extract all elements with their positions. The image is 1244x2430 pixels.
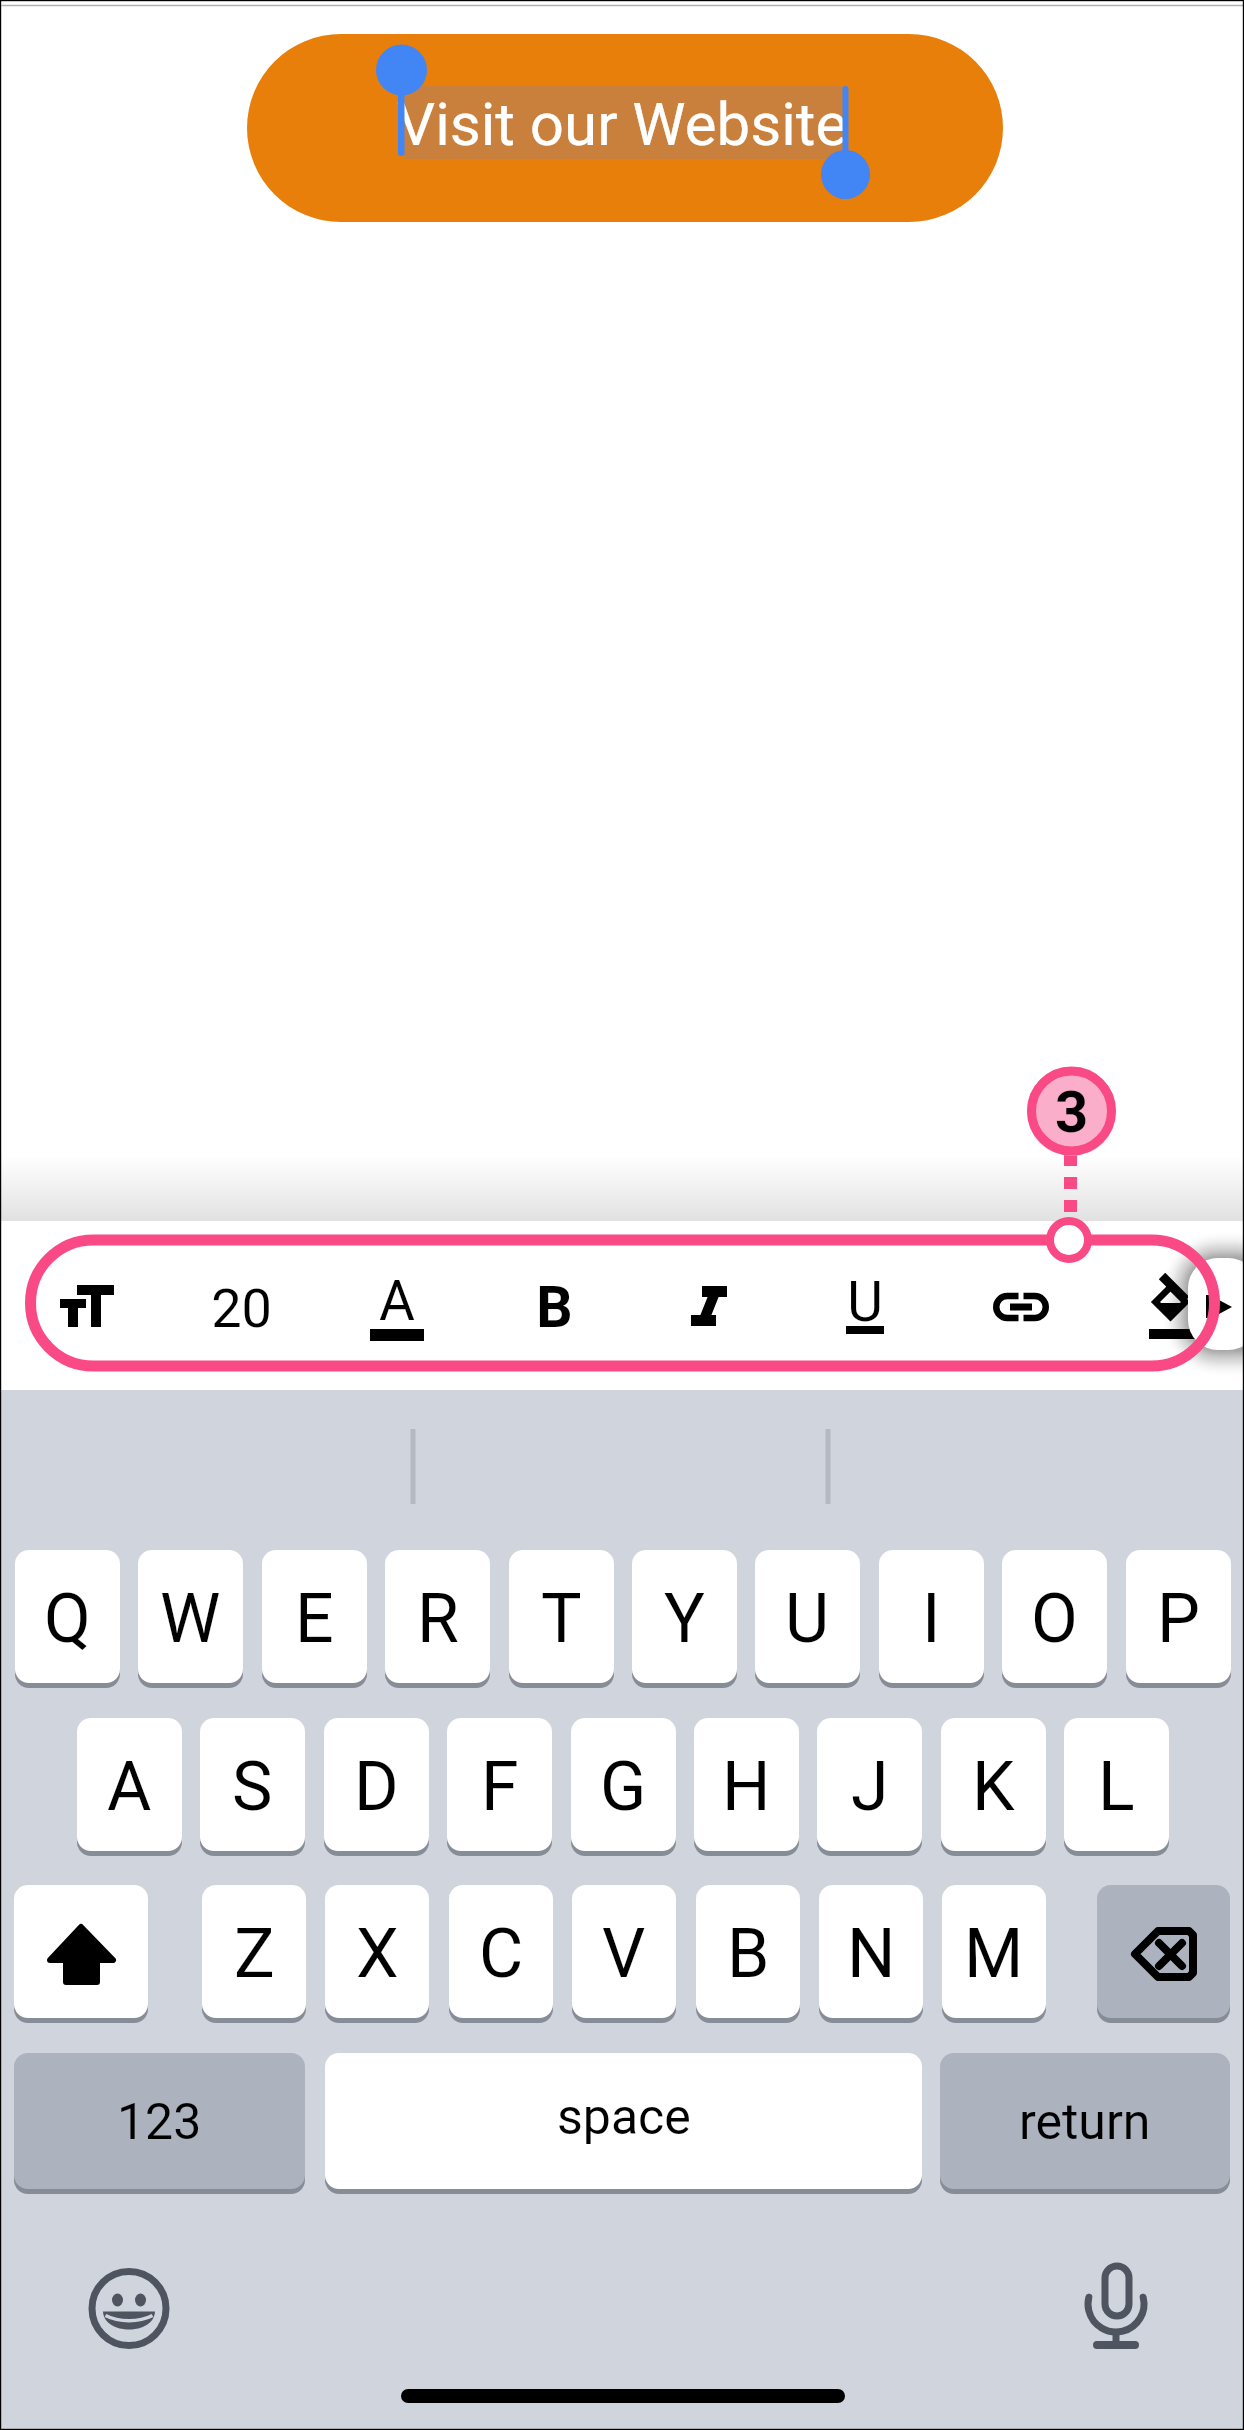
button[interactable]: Underline: [803, 1251, 927, 1363]
staticText: C: [479, 1914, 524, 1994]
button[interactable]: U: [755, 1550, 860, 1683]
staticText: E: [295, 1579, 334, 1659]
button[interactable]: Numbers: [14, 2053, 305, 2189]
button[interactable]: Return: [940, 2053, 1230, 2189]
staticText: S: [232, 1747, 273, 1827]
staticText: 3: [1055, 1078, 1089, 1146]
staticText: F: [481, 1747, 519, 1827]
button[interactable]: Space: [325, 2053, 922, 2189]
button[interactable]: M: [942, 1885, 1046, 2018]
button[interactable]: Text color: [335, 1251, 459, 1363]
staticText: J: [851, 1747, 889, 1827]
staticText: W: [160, 1579, 221, 1659]
staticText: H: [722, 1747, 771, 1827]
button[interactable]: R: [385, 1550, 490, 1683]
button[interactable]: B: [696, 1885, 800, 2018]
staticText: I: [922, 1579, 941, 1659]
staticText: N: [847, 1914, 896, 1994]
button[interactable]: V: [572, 1885, 676, 2018]
staticText: space: [557, 2088, 691, 2147]
staticText: Y: [664, 1579, 705, 1659]
staticText: L: [1098, 1747, 1135, 1827]
button[interactable]: N: [819, 1885, 923, 2018]
staticText: T: [541, 1579, 582, 1659]
staticText: V: [602, 1914, 646, 1994]
staticText: A: [107, 1747, 152, 1827]
staticText: K: [972, 1747, 1015, 1827]
staticText: B: [536, 1274, 573, 1341]
button[interactable]: C: [449, 1885, 553, 2018]
staticText: U: [847, 1270, 883, 1334]
button[interactable]: Backspace: [1097, 1885, 1230, 2018]
staticText: P: [1157, 1579, 1200, 1659]
staticText: return: [1019, 2093, 1151, 2152]
button[interactable]: S: [200, 1718, 305, 1851]
staticText: X: [356, 1914, 399, 1994]
button[interactable]: Text size: [25, 1251, 149, 1363]
button[interactable]: P: [1126, 1550, 1231, 1683]
button[interactable]: Fill color: [1109, 1251, 1233, 1363]
button[interactable]: X: [325, 1885, 429, 2018]
button[interactable]: J: [817, 1718, 922, 1851]
staticText: 123: [117, 2093, 202, 2152]
staticText: R: [417, 1579, 459, 1659]
staticText: A: [379, 1269, 415, 1333]
button[interactable]: E: [262, 1550, 367, 1683]
button[interactable]: W: [138, 1550, 243, 1683]
staticText: Z: [234, 1914, 275, 1994]
button[interactable]: Voice input: [1075, 2255, 1165, 2345]
staticText: M: [964, 1914, 1024, 1994]
button[interactable]: H: [694, 1718, 799, 1851]
button[interactable]: K: [941, 1718, 1046, 1851]
button[interactable]: T: [509, 1550, 614, 1683]
button[interactable]: A: [77, 1718, 182, 1851]
staticText: Q: [44, 1579, 91, 1659]
button[interactable]: Z: [202, 1885, 306, 2018]
staticText: 20: [211, 1277, 272, 1340]
staticText: B: [727, 1914, 770, 1994]
button[interactable]: Q: [15, 1550, 120, 1683]
button[interactable]: [247, 34, 1003, 222]
button[interactable]: I: [879, 1550, 984, 1683]
button[interactable]: G: [571, 1718, 676, 1851]
button[interactable]: Shift: [14, 1885, 148, 2018]
button[interactable]: Insert link: [959, 1251, 1083, 1363]
button[interactable]: O: [1002, 1550, 1107, 1683]
staticText: D: [354, 1747, 399, 1827]
staticText: Visit our Website: [397, 89, 848, 159]
button[interactable]: More options: [1188, 1258, 1244, 1350]
button[interactable]: Step 3: [1027, 1067, 1116, 1156]
button[interactable]: Emoji: [85, 2265, 173, 2353]
staticText: O: [1031, 1579, 1078, 1659]
staticText: U: [785, 1579, 830, 1659]
button[interactable]: D: [324, 1718, 429, 1851]
button[interactable]: L: [1064, 1718, 1169, 1851]
button[interactable]: Font size 20: [179, 1251, 303, 1363]
button[interactable]: Italic: [647, 1251, 771, 1363]
staticText: G: [600, 1747, 647, 1827]
button[interactable]: Y: [632, 1550, 737, 1683]
button[interactable]: Bold: [492, 1251, 616, 1363]
button[interactable]: F: [447, 1718, 552, 1851]
